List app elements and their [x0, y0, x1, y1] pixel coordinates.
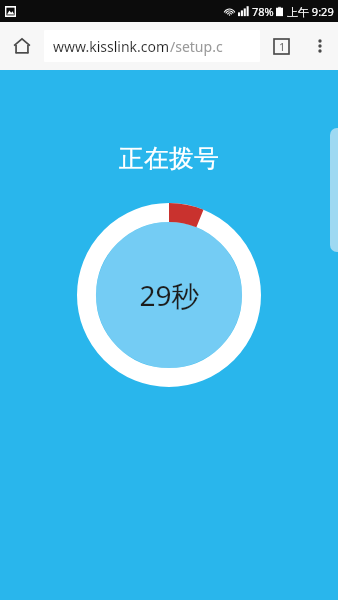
button[interactable]: Home — [0, 22, 44, 70]
staticText: 正在拨号 — [119, 143, 219, 174]
button[interactable]: www.kisslink.com — [44, 30, 260, 62]
button[interactable]: Tabs — [260, 22, 302, 70]
staticText: 29秒 — [139, 276, 200, 314]
staticText: 1 — [279, 40, 285, 54]
staticText: www.kisslink.com — [53, 37, 170, 56]
button[interactable]: More options — [302, 22, 338, 70]
staticText: 上午 9:29 — [287, 4, 334, 19]
staticText: /setup.c — [170, 37, 223, 56]
staticText: 78% — [252, 4, 274, 19]
